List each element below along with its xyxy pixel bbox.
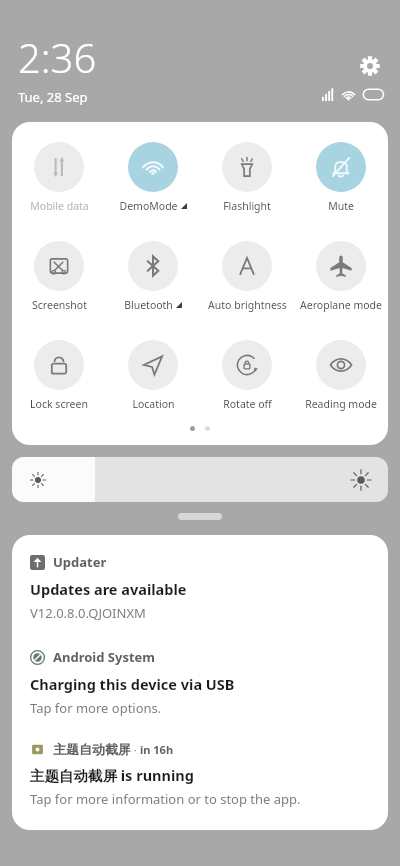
staticText: Lock screen [30,397,88,411]
staticText: Reading mode [305,397,377,411]
staticText: Tue, 28 Sep [18,88,88,106]
staticText: DemoMode [119,199,178,213]
staticText: Screenshot [32,298,87,312]
staticText: Charging this device via USB [30,674,235,694]
button[interactable]: Auto brightness [202,239,292,314]
button[interactable]: Screenshot [14,239,104,314]
staticText: 2:36 [18,30,97,84]
staticText: Flashlight [223,199,271,213]
button[interactable]: Updater [12,553,388,622]
staticText: Location [132,397,175,411]
staticText: Android System [53,648,156,666]
button[interactable]: Mute [296,140,386,215]
button[interactable]: Flashlight [202,140,292,215]
staticText: Updates are available [30,579,187,599]
staticText: Updater [53,553,107,571]
button[interactable]: DemoMode [108,140,198,215]
button[interactable]: Expand [178,513,222,520]
staticText: Rotate off [223,397,272,411]
staticText: Auto brightness [208,298,287,312]
staticText: Tap for more options. [30,699,162,717]
button[interactable]: Brightness [12,457,388,502]
staticText: · [131,742,140,757]
staticText: Tap for more information or to stop the … [30,790,301,808]
button[interactable]: Settings [354,50,386,82]
staticText: Mobile data [30,199,89,213]
button[interactable]: Bluetooth [108,239,198,314]
staticText: Aeroplane mode [300,298,382,312]
staticText: in 16h [140,742,174,757]
staticText: Bluetooth [124,298,173,312]
staticText: 主题自动截屏 [53,741,131,757]
staticText: V12.0.8.0.QJOINXM [30,604,146,622]
button[interactable]: Lock screen [14,338,104,413]
staticText: 主题自动截屏 is running [30,765,194,785]
button[interactable]: 主题自动截屏 [12,741,388,808]
button[interactable]: Reading mode [296,338,386,413]
button[interactable]: Android System [12,648,388,717]
button[interactable]: Aeroplane mode [296,239,386,314]
staticText: Mute [328,199,354,213]
button[interactable]: Rotate off [202,338,292,413]
button[interactable]: Location [108,338,198,413]
button[interactable]: Mobile data [14,140,104,215]
